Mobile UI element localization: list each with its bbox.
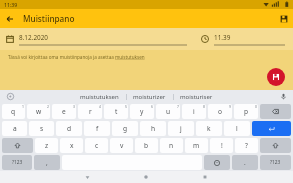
button[interactable]: Askelpalautin <box>260 104 291 119</box>
button[interactable]: e <box>52 104 76 119</box>
button[interactable]: q <box>2 104 25 119</box>
staticText: o <box>218 107 222 116</box>
button[interactable]: Lisää <box>0 90 20 103</box>
button[interactable]: z <box>35 138 58 153</box>
staticText: 0 <box>255 104 257 109</box>
staticText: 11:39 <box>4 1 18 8</box>
button[interactable]: moisturizer <box>133 90 166 103</box>
button[interactable]: p <box>234 104 258 119</box>
staticText: 1 <box>22 104 24 109</box>
button[interactable]: h <box>140 121 166 136</box>
button[interactable]: g <box>112 121 138 136</box>
button[interactable]: Tallenna <box>274 9 293 28</box>
staticText: u <box>166 107 171 116</box>
button[interactable]: moisturiser <box>180 90 213 103</box>
staticText: j <box>180 124 182 133</box>
staticText: m <box>193 141 200 150</box>
button[interactable]: i <box>182 104 206 119</box>
staticText: s <box>40 124 44 133</box>
button[interactable]: Aloitusnäyttö <box>116 171 175 183</box>
staticText: ?123 <box>12 159 23 166</box>
button[interactable]: w <box>27 104 50 119</box>
button[interactable]: muistutuksen <box>80 90 119 103</box>
button[interactable]: l <box>224 121 250 136</box>
button[interactable]: Vaihto <box>2 138 33 153</box>
button[interactable]: Vaihto <box>260 138 291 153</box>
staticText: . <box>244 158 246 167</box>
button[interactable]: k <box>196 121 222 136</box>
button[interactable]: x <box>60 138 83 153</box>
button[interactable]: j <box>168 121 194 136</box>
staticText: 8.12.2020 <box>19 33 49 42</box>
button[interactable]: Rivinvaihto <box>252 121 291 136</box>
button[interactable]: Takaisin <box>58 171 116 183</box>
button[interactable]: v <box>110 138 133 153</box>
staticText: muistutuksen <box>80 93 119 101</box>
button[interactable]: b <box>135 138 158 153</box>
staticText: Tässä voi kirjoittaa oma muistiinpanoja … <box>8 54 145 60</box>
staticText: 2 <box>47 104 49 109</box>
button[interactable]: Emoji <box>204 155 230 170</box>
staticText: 5 <box>125 104 127 109</box>
staticText: g <box>123 124 128 133</box>
button[interactable]: o <box>208 104 232 119</box>
button[interactable]: s <box>29 121 54 136</box>
staticText: i <box>193 107 195 116</box>
button[interactable]: ?123 <box>2 155 32 170</box>
staticText: v <box>120 141 124 150</box>
button[interactable]: c <box>85 138 108 153</box>
button[interactable]: Takaisin <box>0 9 19 28</box>
button[interactable]: r <box>78 104 102 119</box>
staticText: q <box>11 107 16 116</box>
staticText: p <box>244 107 249 116</box>
staticText: , <box>46 158 48 167</box>
button[interactable]: n <box>160 138 183 153</box>
button[interactable]: d <box>56 121 82 136</box>
button[interactable]: ?123 <box>260 155 291 170</box>
staticText: k <box>207 124 211 133</box>
staticText: w <box>36 107 42 116</box>
staticText: n <box>169 141 174 150</box>
staticText: b <box>144 141 149 150</box>
staticText: r <box>89 107 92 116</box>
staticText: 4 <box>99 104 101 109</box>
staticText: ?123 <box>270 159 281 166</box>
staticText: z <box>45 141 49 150</box>
button[interactable]: a <box>2 121 27 136</box>
button[interactable]: . <box>232 155 258 170</box>
button[interactable]: y <box>130 104 154 119</box>
staticText: d <box>67 124 72 133</box>
staticText: t <box>115 107 118 116</box>
staticText: h <box>151 124 156 133</box>
staticText: 3 <box>73 104 75 109</box>
button[interactable]: Puhehaku <box>273 90 293 103</box>
staticText: l <box>236 124 238 133</box>
staticText: e <box>62 107 66 116</box>
button[interactable]: , <box>34 155 60 170</box>
button[interactable]: f <box>84 121 110 136</box>
button[interactable]: Viimeisimmät <box>175 171 234 183</box>
button[interactable]: Tallenna muistiinpano <box>267 68 285 86</box>
staticText: ! <box>221 141 223 150</box>
button[interactable]: u <box>156 104 180 119</box>
staticText: x <box>70 141 74 150</box>
staticText: y <box>140 107 144 116</box>
staticText: c <box>95 141 99 150</box>
button[interactable]: m <box>185 138 208 153</box>
button[interactable]: ? <box>235 138 258 153</box>
staticText: 8 <box>203 104 205 109</box>
staticText: moisturizer <box>133 93 166 101</box>
staticText: 9 <box>229 104 231 109</box>
button[interactable]: 8.12.2020 <box>0 28 195 50</box>
staticText: a <box>13 124 17 133</box>
staticText: moisturiser <box>180 93 213 101</box>
staticText: f <box>96 124 99 133</box>
staticText: 6 <box>151 104 153 109</box>
button[interactable]: ! <box>210 138 233 153</box>
staticText: 11.39 <box>214 33 231 42</box>
button[interactable]: 11.39 <box>195 28 293 50</box>
staticText: 7 <box>177 104 179 109</box>
button[interactable]: t <box>104 104 128 119</box>
staticText: Muistiinpano <box>23 13 75 24</box>
